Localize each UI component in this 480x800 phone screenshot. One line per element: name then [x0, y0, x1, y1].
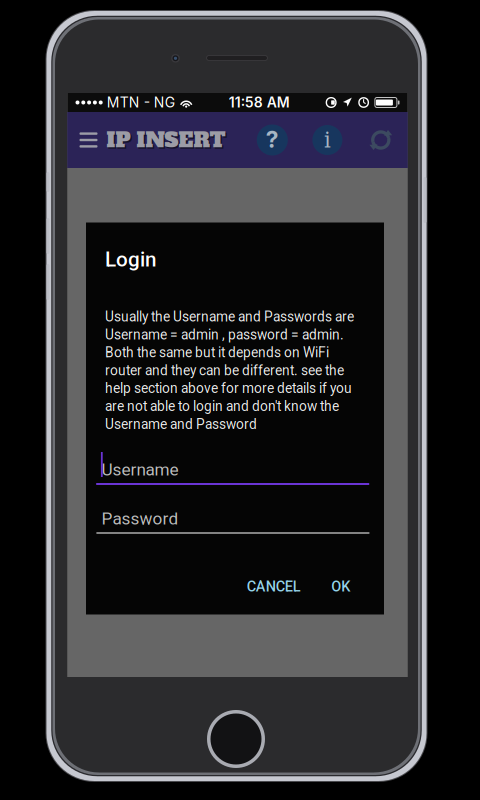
- button[interactable]: Information: [305, 112, 349, 168]
- staticText: Usually the Username and Passwords are U…: [105, 309, 354, 432]
- staticText: Username: [101, 459, 178, 480]
- button[interactable]: OK: [319, 569, 363, 603]
- button[interactable]: Password: [86, 492, 384, 536]
- staticText: i: [324, 128, 331, 152]
- staticText: OK: [331, 578, 350, 595]
- button[interactable]: Refresh: [359, 112, 403, 168]
- staticText: Login: [105, 247, 157, 272]
- staticText: ?: [266, 126, 279, 153]
- button[interactable]: Username: [86, 443, 384, 487]
- button[interactable]: CANCEL: [238, 569, 310, 603]
- staticText: CANCEL: [247, 578, 301, 595]
- button[interactable]: Menu: [69, 112, 107, 168]
- staticText: IP INSERT: [108, 127, 227, 156]
- staticText: IP INSERT: [106, 126, 225, 154]
- staticText: Password: [101, 508, 178, 529]
- staticText: 11:58 AM: [229, 94, 290, 111]
- staticText: MTN - NG: [107, 94, 175, 111]
- button[interactable]: Help: [250, 112, 294, 168]
